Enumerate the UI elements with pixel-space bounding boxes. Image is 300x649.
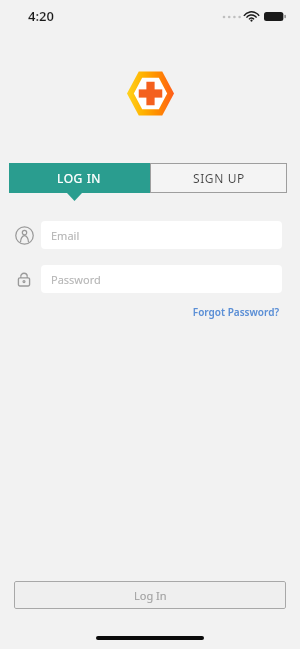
staticText: SIGN UP <box>193 170 245 186</box>
button[interactable]: Forgot Password? <box>189 302 282 322</box>
staticText: Password <box>51 272 101 287</box>
button[interactable]: Password <box>41 265 282 293</box>
button[interactable]: Log In <box>14 581 286 609</box>
staticText: LOG IN <box>57 170 102 186</box>
staticText: 4:20 <box>28 7 54 25</box>
button[interactable]: SIGN UP <box>150 163 287 193</box>
staticText: Log In <box>134 588 167 603</box>
button[interactable]: Email <box>41 221 282 249</box>
button[interactable]: LOG IN <box>9 163 150 193</box>
staticText: Forgot Password? <box>192 305 279 319</box>
staticText: Email <box>51 228 80 243</box>
